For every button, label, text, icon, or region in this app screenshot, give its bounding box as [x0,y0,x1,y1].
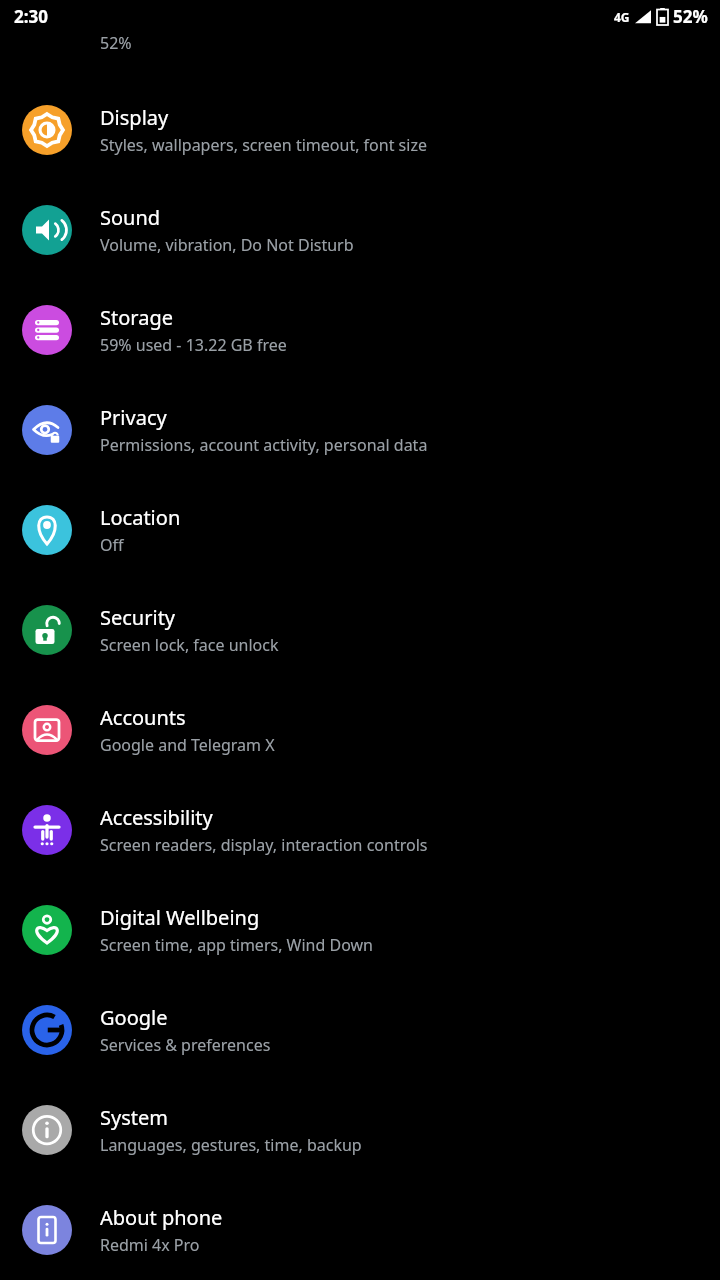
staticText: 2:30 [14,5,48,28]
staticText: Privacy [100,404,167,431]
staticText: System [100,1104,168,1131]
staticText: Redmi 4x Pro [100,1234,200,1256]
staticText: Google [100,1004,168,1031]
staticText: Google and Telegram X [100,734,275,756]
other: Battery [22,0,72,30]
button[interactable]: Accessibility [0,780,720,880]
button[interactable]: Location [0,480,720,580]
button[interactable]: System [0,1080,720,1180]
button[interactable]: Accounts [0,680,720,780]
button[interactable]: Sound [0,180,720,280]
button[interactable]: Privacy [0,380,720,480]
staticText: 59% used - 13.22 GB free [100,334,287,356]
staticText: Accounts [100,704,186,731]
button[interactable]: About phone [0,1180,720,1280]
staticText: Location [100,504,181,531]
button[interactable]: Security [0,580,720,680]
button[interactable]: Google [0,980,720,1080]
staticText: Languages, gestures, time, backup [100,1134,362,1156]
button[interactable]: Digital Wellbeing [0,880,720,980]
staticText: Screen readers, display, interaction con… [100,834,428,856]
staticText: Accessibility [100,804,213,831]
staticText: 52% [673,5,708,28]
button[interactable]: Battery [0,0,720,80]
staticText: Screen time, app timers, Wind Down [100,934,374,956]
staticText: Storage [100,304,173,331]
button[interactable]: Storage [0,280,720,380]
staticText: Volume, vibration, Do Not Disturb [100,234,354,256]
staticText: About phone [100,1204,223,1231]
staticText: Styles, wallpapers, screen timeout, font… [100,134,427,156]
staticText: Security [100,604,176,631]
staticText: Display [100,104,169,131]
staticText: 52% [100,32,132,54]
staticText: Screen lock, face unlock [100,634,279,656]
staticText: 4G [614,9,630,25]
staticText: Off [100,534,124,556]
staticText: Services & preferences [100,1034,271,1056]
staticText: Digital Wellbeing [100,904,260,931]
staticText: Permissions, account activity, personal … [100,434,428,456]
button[interactable]: Display [0,80,720,180]
staticText: Sound [100,204,161,231]
